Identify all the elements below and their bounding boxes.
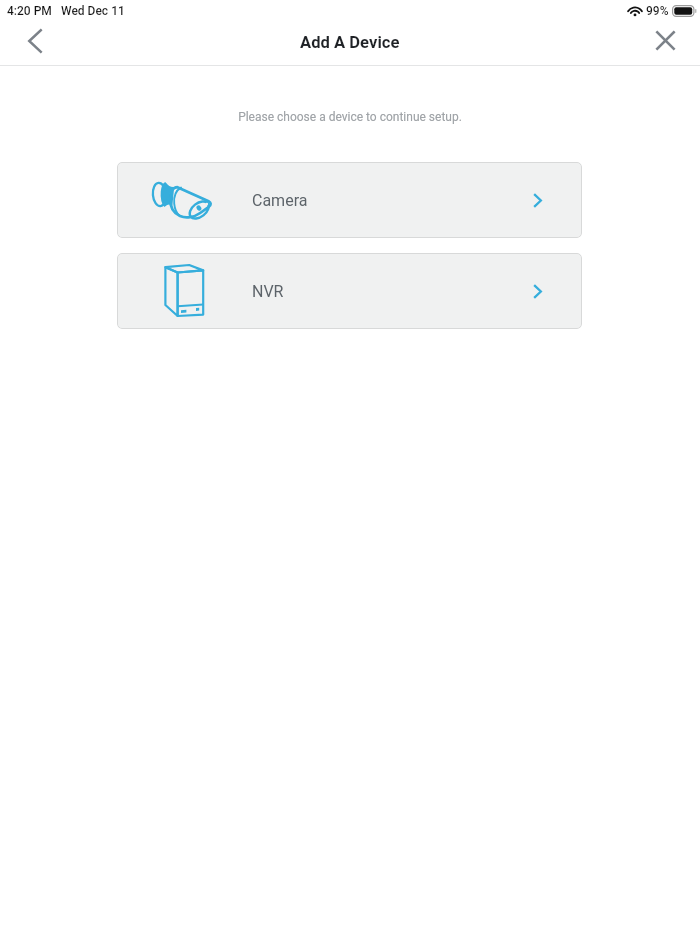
button[interactable]: Camera bbox=[117, 162, 582, 238]
staticText: Camera bbox=[252, 191, 308, 210]
button[interactable]: NVR bbox=[117, 253, 582, 329]
staticText: Please choose a device to continue setup… bbox=[0, 110, 700, 124]
staticText: Add A Device bbox=[300, 33, 400, 52]
button[interactable]: Close bbox=[646, 24, 684, 62]
staticText: NVR bbox=[252, 282, 284, 301]
staticText: 4:20 PM bbox=[7, 4, 52, 18]
button[interactable]: Back bbox=[9, 23, 49, 63]
staticText: Wed Dec 11 bbox=[61, 4, 125, 18]
staticText: 99% bbox=[646, 4, 669, 18]
